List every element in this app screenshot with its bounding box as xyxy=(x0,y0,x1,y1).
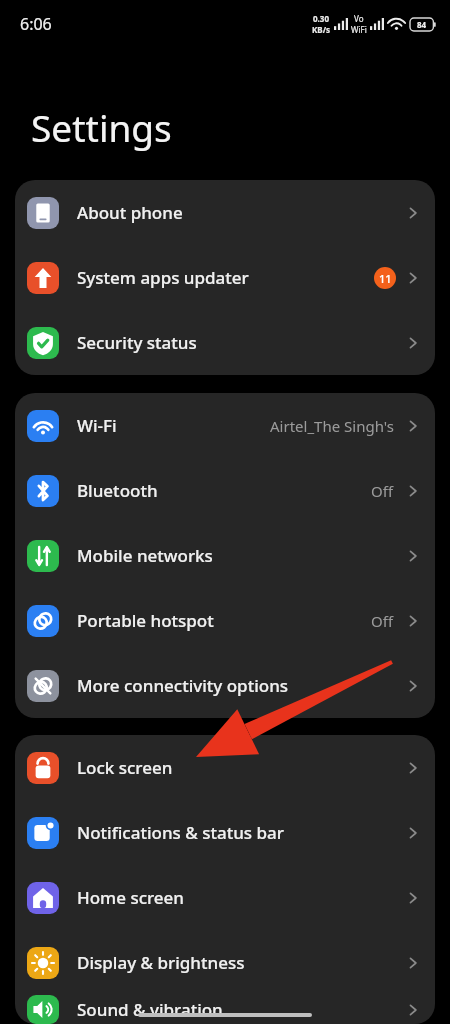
staticText: Sound & vibration xyxy=(77,998,223,1021)
staticText: About phone xyxy=(77,201,183,224)
button[interactable]: Security status xyxy=(15,310,435,375)
other: More connectivity options xyxy=(27,670,59,702)
staticText: Wi-Fi xyxy=(77,414,117,437)
staticText: 11 xyxy=(379,271,392,286)
other: Sound & vibration xyxy=(27,995,59,1024)
button[interactable]: Display & brightness xyxy=(15,930,435,995)
other: Display & brightness xyxy=(27,947,59,979)
staticText: Off xyxy=(371,611,394,631)
staticText: WiFi xyxy=(351,24,367,35)
staticText: Display & brightness xyxy=(77,951,245,974)
staticText: 0.30 xyxy=(313,13,329,24)
staticText: Home screen xyxy=(77,886,185,909)
other: Security status xyxy=(27,327,59,359)
staticText: KB/s xyxy=(312,24,330,35)
staticText: 84 xyxy=(417,19,427,30)
other: Mobile networks xyxy=(27,540,59,572)
staticText: Off xyxy=(371,481,394,501)
button[interactable]: About phone xyxy=(15,180,435,245)
staticText: More connectivity options xyxy=(77,674,289,697)
button[interactable]: System apps updater xyxy=(15,245,435,310)
button[interactable]: Notifications & status bar xyxy=(15,800,435,865)
button[interactable]: Lock screen xyxy=(15,735,435,800)
button[interactable]: Bluetooth xyxy=(15,458,435,523)
button[interactable]: Wi-Fi xyxy=(15,393,435,458)
other: Home screen xyxy=(27,882,59,914)
other: System apps updater xyxy=(27,262,59,294)
other: About phone xyxy=(27,197,59,229)
button[interactable]: Portable hotspot xyxy=(15,588,435,653)
staticText: Notifications & status bar xyxy=(77,821,284,844)
staticText: Security status xyxy=(77,331,197,354)
staticText: Lock screen xyxy=(77,756,173,779)
staticText: Portable hotspot xyxy=(77,609,214,632)
button[interactable]: Home screen xyxy=(15,865,435,930)
staticText: Settings xyxy=(31,102,172,152)
other: Notifications & status bar xyxy=(27,817,59,849)
other: Portable hotspot xyxy=(27,605,59,637)
staticText: Airtel_The Singh's xyxy=(270,416,394,436)
staticText: System apps updater xyxy=(77,266,249,289)
button[interactable]: Mobile networks xyxy=(15,523,435,588)
other: Lock screen xyxy=(27,752,59,784)
button[interactable]: More connectivity options xyxy=(15,653,435,718)
button[interactable]: Sound & vibration xyxy=(15,995,435,1024)
staticText: Mobile networks xyxy=(77,544,213,567)
staticText: Bluetooth xyxy=(77,479,158,502)
other: Bluetooth xyxy=(27,475,59,507)
staticText: Vo xyxy=(354,13,364,24)
staticText: 6:06 xyxy=(20,13,52,35)
other: Wi-Fi xyxy=(27,410,59,442)
